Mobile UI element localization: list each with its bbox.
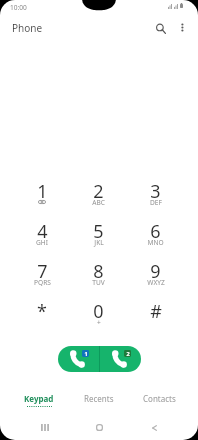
button[interactable]: 6 (127, 218, 184, 258)
button[interactable]: Call with SIM 2 (100, 346, 141, 372)
button[interactable]: Call with SIM 1 (58, 346, 99, 372)
button[interactable]: 3 (127, 178, 184, 218)
staticText: + (97, 318, 101, 327)
button[interactable]: 2 (70, 178, 127, 218)
staticText: Phone (12, 21, 43, 35)
staticText: 5 (93, 219, 104, 244)
staticText: 7 (37, 259, 48, 284)
button[interactable]: Recent apps (17, 413, 72, 440)
staticText: # (150, 299, 162, 324)
staticText: ABC (92, 198, 105, 207)
button[interactable]: 8 (70, 258, 127, 298)
staticText: 0 (93, 299, 104, 324)
button[interactable]: # (127, 298, 184, 338)
staticText: 8 (93, 259, 104, 284)
staticText: DEF (150, 198, 162, 207)
staticText: JKL (94, 238, 104, 247)
button[interactable]: Recents (69, 393, 129, 413)
staticText: 9 (150, 259, 161, 284)
staticText: PQRS (34, 278, 51, 287)
staticText: Contacts (143, 393, 176, 404)
button[interactable]: Keypad (9, 393, 69, 413)
button[interactable]: Contacts (129, 393, 189, 413)
button[interactable]: 4 (14, 218, 70, 258)
button[interactable]: 7 (14, 258, 70, 298)
staticText: 3 (150, 179, 161, 204)
staticText: * (37, 299, 47, 324)
staticText: MNO (147, 238, 164, 247)
staticText: 4 (37, 219, 48, 244)
button[interactable]: * (14, 298, 70, 338)
button[interactable]: 9 (127, 258, 184, 298)
staticText: TUV (92, 278, 105, 287)
button[interactable]: 0 (70, 298, 127, 338)
staticText: Recents (84, 393, 114, 404)
staticText: 10:00 (10, 3, 27, 12)
staticText: 1 (37, 179, 48, 204)
staticText: GHI (36, 238, 48, 247)
button[interactable]: More options (170, 16, 193, 39)
staticText: 6 (150, 219, 161, 244)
staticText: Keypad (24, 393, 54, 404)
staticText: WXYZ (147, 278, 165, 287)
button[interactable]: 1 (14, 178, 70, 218)
button[interactable]: Back (127, 413, 182, 440)
staticText: 2 (126, 350, 130, 357)
staticText: 2 (93, 179, 104, 204)
button[interactable]: 5 (70, 218, 127, 258)
button[interactable]: Search (149, 17, 173, 41)
staticText: 1 (84, 350, 88, 357)
button[interactable]: Home (72, 413, 127, 440)
